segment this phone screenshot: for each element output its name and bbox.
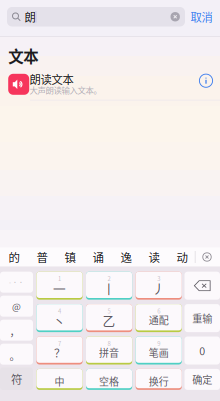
staticText: 笔画 (149, 345, 169, 360)
button[interactable]: 2 (86, 272, 132, 300)
staticText: ， (9, 324, 20, 339)
staticText: 重输 (192, 311, 212, 325)
button[interactable]: 确定 (184, 369, 220, 390)
staticText: 朗 (24, 8, 35, 25)
staticText: ？ (54, 344, 65, 361)
staticText: 动 (176, 249, 187, 265)
button[interactable]: 0 (184, 336, 220, 364)
button[interactable]: 分词 (0, 272, 33, 293)
button[interactable]: 符号 (0, 367, 33, 390)
staticText: 。 (9, 348, 20, 363)
button[interactable]: 读 (140, 247, 168, 266)
staticText: 丶 (53, 311, 66, 330)
button[interactable]: 重输 (184, 304, 220, 332)
staticText: 4 (58, 307, 61, 315)
staticText: 5 (108, 307, 111, 315)
button[interactable]: 5 (86, 304, 132, 332)
button[interactable]: 句号 (0, 344, 33, 365)
button[interactable]: 镇 (56, 247, 84, 266)
button[interactable]: 6 (136, 304, 182, 332)
staticText: 符 (11, 370, 22, 387)
button[interactable]: 更多信息 (199, 74, 213, 87)
button[interactable]: 1 (36, 272, 83, 300)
staticText: ‑ ·· (9, 278, 24, 286)
staticText: 镇 (64, 249, 75, 265)
staticText: 诵 (92, 249, 103, 265)
staticText: 1 (58, 274, 61, 283)
staticText: 朗读文本 (30, 71, 74, 87)
staticText: 文本 (8, 45, 38, 67)
staticText: 的 (8, 249, 19, 265)
button[interactable]: 删除 (184, 272, 220, 300)
button[interactable]: 8 (86, 336, 132, 364)
button[interactable] (136, 369, 182, 390)
button[interactable]: 7 (36, 336, 83, 364)
staticText: 3 (157, 274, 160, 283)
staticText: 中 (54, 374, 64, 388)
button[interactable] (86, 369, 132, 390)
staticText: 丨 (103, 279, 116, 297)
button[interactable]: 收起候选栏 (195, 247, 219, 266)
staticText: 7 (58, 339, 61, 348)
button[interactable] (36, 369, 83, 390)
button[interactable]: @ (0, 296, 33, 317)
staticText: 丿 (152, 279, 165, 297)
staticText: 空格 (99, 374, 119, 388)
staticText: @ (12, 299, 21, 313)
staticText: 普 (36, 249, 47, 265)
staticText: 取消 (190, 8, 212, 25)
staticText: 6 (157, 307, 160, 315)
staticText: 大声朗读输入文本。 (29, 84, 101, 96)
button[interactable]: 的 (0, 247, 28, 266)
staticText: 确定 (192, 372, 212, 387)
button[interactable]: 逗号 (0, 320, 33, 341)
staticText: 9 (157, 339, 160, 348)
button[interactable]: 普 (28, 247, 56, 266)
button[interactable]: 逸 (112, 247, 140, 266)
button[interactable]: 4 (36, 304, 83, 332)
staticText: 通配 (149, 313, 169, 327)
button[interactable]: 朗读文本 (0, 70, 220, 99)
button[interactable]: 取消 (187, 7, 215, 26)
button[interactable]: 9 (136, 336, 182, 364)
staticText: 2 (108, 274, 111, 283)
staticText: 换行 (149, 374, 169, 388)
button[interactable]: 动 (168, 247, 196, 266)
button[interactable]: 3 (136, 272, 182, 300)
staticText: 一 (53, 279, 66, 297)
staticText: 逸 (120, 249, 131, 265)
staticText: 0 (199, 343, 205, 358)
button[interactable]: 诵 (84, 247, 112, 266)
staticText: 拼音 (99, 345, 119, 360)
staticText: 乙 (103, 311, 116, 330)
staticText: 读 (148, 249, 159, 265)
staticText: 8 (108, 339, 111, 348)
